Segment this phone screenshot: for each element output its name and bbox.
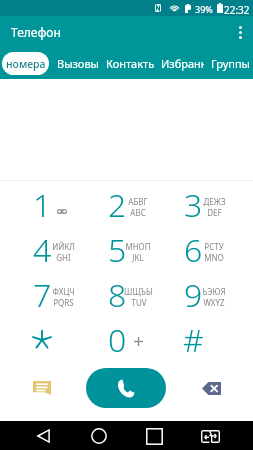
button[interactable]: Backspace: [195, 372, 227, 404]
staticText: 8: [108, 273, 127, 317]
staticText: TUV: [131, 297, 147, 308]
staticText: ABC: [130, 207, 146, 218]
staticText: 7: [33, 273, 52, 317]
button[interactable]: 1: [17, 182, 92, 227]
button[interactable]: Группы: [211, 48, 252, 79]
staticText: номера: [6, 57, 46, 71]
button[interactable]: 0: [92, 317, 167, 362]
button[interactable]: 2: [92, 182, 167, 227]
staticText: MNO: [204, 252, 224, 263]
staticText: 1: [33, 183, 52, 227]
staticText: #: [183, 318, 204, 362]
button[interactable]: номера: [2, 52, 49, 75]
staticText: 39%: [195, 3, 213, 15]
staticText: Телефон: [11, 24, 61, 40]
staticText: WXYZ: [203, 297, 225, 308]
staticText: 0: [108, 318, 127, 362]
staticText: Избранные: [161, 56, 204, 71]
staticText: 4: [33, 228, 52, 272]
button[interactable]: Избранные: [161, 48, 204, 79]
staticText: 2: [108, 183, 127, 227]
button[interactable]: More options: [227, 16, 253, 48]
staticText: GHI: [56, 252, 71, 263]
button[interactable]: 4: [17, 227, 92, 272]
staticText: Группы: [211, 56, 250, 71]
staticText: Вызовы: [57, 56, 99, 71]
staticText: 9: [184, 273, 203, 317]
button[interactable]: #: [168, 317, 243, 362]
staticText: ШЩЪЫ: [124, 286, 153, 297]
staticText: РСТУ: [204, 241, 224, 252]
staticText: 6: [184, 228, 203, 272]
staticText: АБВГ: [128, 196, 148, 207]
button[interactable]: Call: [86, 368, 166, 408]
button[interactable]: Вызовы: [57, 48, 99, 79]
staticText: DEF: [207, 207, 222, 218]
button[interactable]: Switch windows: [196, 422, 224, 450]
staticText: 22:32: [224, 3, 250, 17]
button[interactable]: [17, 317, 92, 362]
button[interactable]: Back: [29, 422, 57, 450]
staticText: ЬЭЮЯ: [202, 286, 226, 297]
button[interactable]: Send message: [26, 372, 58, 404]
staticText: МНОП: [125, 241, 151, 252]
staticText: ФХЦЧ: [52, 286, 75, 297]
button[interactable]: 6: [168, 227, 243, 272]
staticText: Контакты: [106, 56, 154, 71]
button[interactable]: 8: [92, 272, 167, 317]
staticText: PQRS: [53, 297, 74, 308]
button[interactable]: Home: [85, 422, 113, 450]
button[interactable]: 7: [17, 272, 92, 317]
button[interactable]: 5: [92, 227, 167, 272]
button[interactable]: 9: [168, 272, 243, 317]
button[interactable]: 3: [168, 182, 243, 227]
staticText: JKL: [132, 252, 144, 263]
staticText: ИЙКЛ: [52, 241, 75, 252]
button[interactable]: Recent apps: [140, 422, 168, 450]
staticText: ДЕЖЗ: [203, 196, 226, 207]
button[interactable]: Контакты: [106, 48, 154, 79]
staticText: 3: [184, 183, 203, 227]
staticText: 5: [108, 228, 127, 272]
